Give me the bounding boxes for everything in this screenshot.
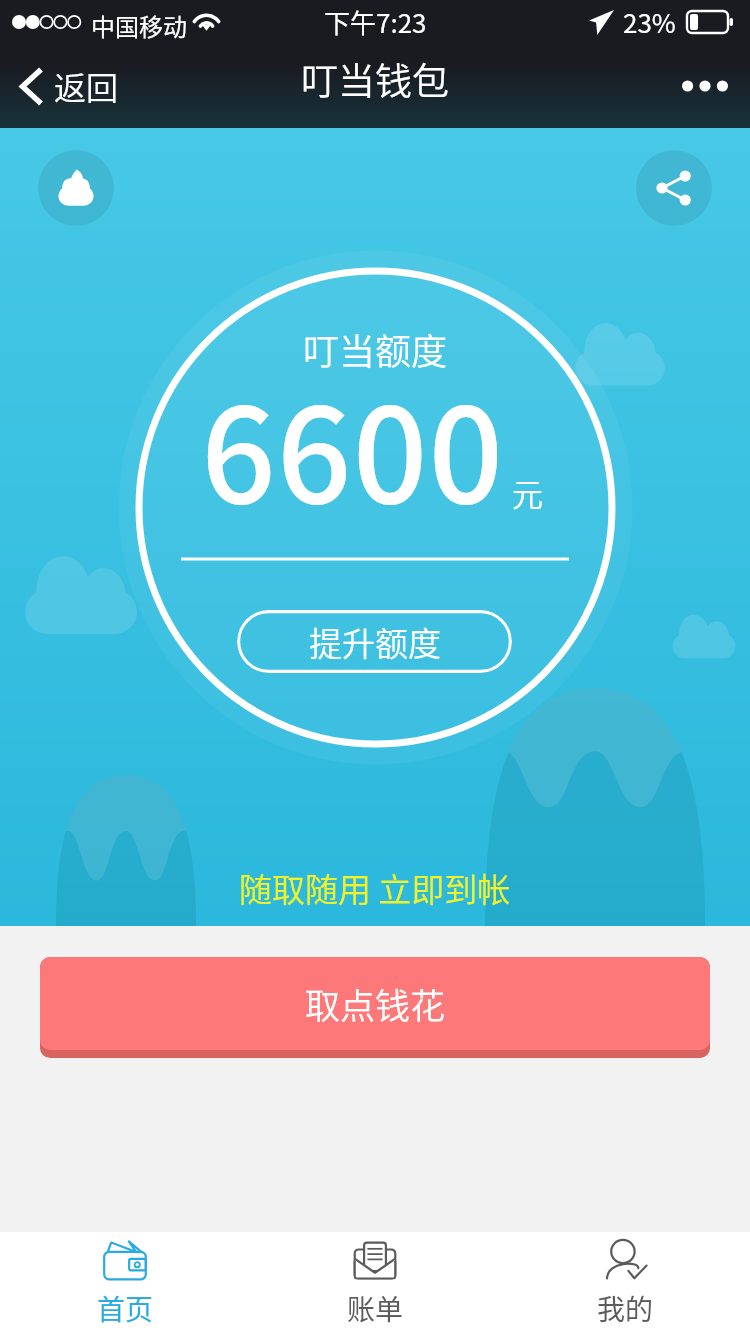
staticText: 提升额度 (309, 618, 441, 666)
staticText: 账单 (347, 1288, 404, 1329)
button[interactable]: 取点钱花 (40, 957, 710, 1058)
staticText: 23% (623, 3, 676, 41)
staticText: 叮当额度 (303, 323, 448, 375)
staticText: 中国移动 (91, 8, 187, 43)
staticText: 下午7:23 (324, 3, 427, 41)
button[interactable]: 首页 (0, 1232, 250, 1334)
staticText: 元 (512, 470, 543, 515)
staticText: 首页 (97, 1288, 154, 1329)
staticText: 6600 (201, 351, 505, 541)
staticText: 我的 (597, 1288, 654, 1329)
button[interactable]: Coins (38, 150, 114, 226)
button[interactable]: Share (636, 150, 712, 226)
button[interactable]: 提升额度 (237, 610, 512, 673)
button[interactable]: More options (660, 44, 750, 128)
button[interactable]: 账单 (250, 1232, 500, 1334)
staticText: 返回 (54, 63, 119, 109)
button[interactable]: 返回 (0, 44, 133, 128)
staticText: 叮当钱包 (301, 52, 449, 106)
button[interactable]: 我的 (500, 1232, 750, 1334)
staticText: 随取随用 立即到帐 (239, 864, 511, 912)
staticText: 取点钱花 (305, 978, 446, 1029)
